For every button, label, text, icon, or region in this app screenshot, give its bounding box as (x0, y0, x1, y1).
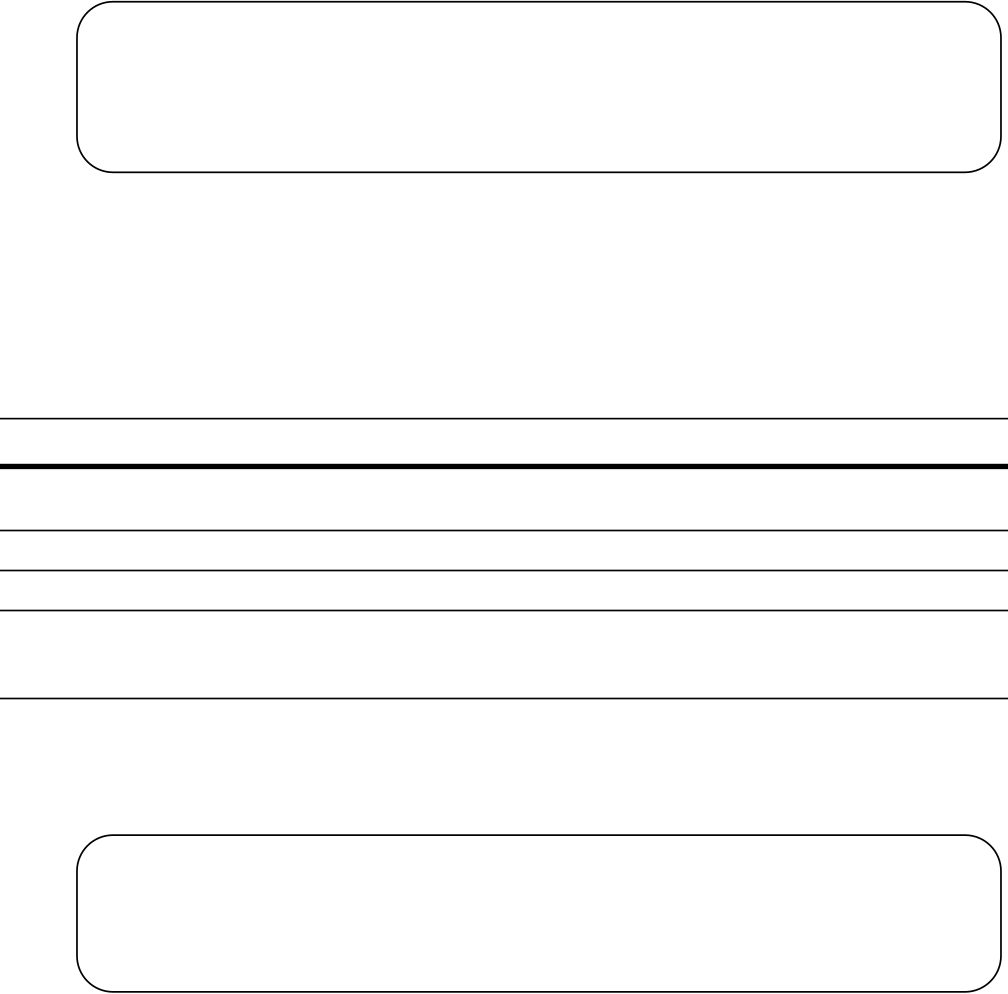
button[interactable]: List row 4 (0, 571, 1008, 610)
button[interactable]: Featured card (77, 2, 1001, 172)
button[interactable]: List row 3 (0, 531, 1008, 570)
button[interactable]: Primary action (77, 835, 1001, 992)
button[interactable]: List row 2 (0, 469, 1008, 530)
button[interactable]: List row 5 (0, 611, 1008, 698)
button[interactable]: List row 1 (0, 419, 1008, 464)
